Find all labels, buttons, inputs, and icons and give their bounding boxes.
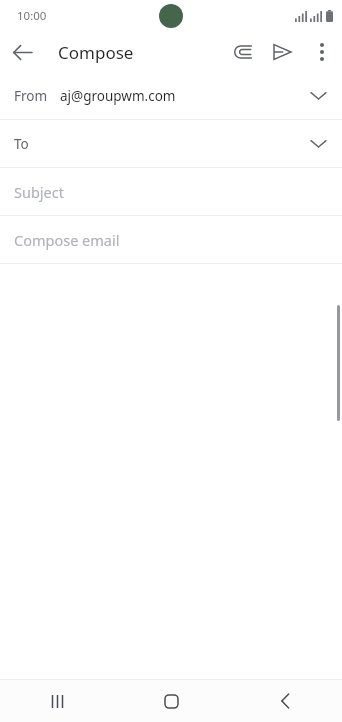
staticText: Compose email (14, 230, 120, 250)
button[interactable]: Recents (22, 680, 92, 722)
button[interactable]: Compose email (0, 216, 342, 263)
button[interactable]: To (0, 120, 342, 167)
staticText: 10:00 (17, 8, 47, 24)
button[interactable]: More options (302, 32, 342, 72)
button[interactable]: Back (250, 680, 320, 722)
staticText: To (14, 135, 29, 153)
staticText: aj@groupwm.com (60, 87, 176, 105)
button[interactable]: Home (136, 680, 206, 722)
button[interactable]: Back (0, 32, 44, 72)
staticText: From (14, 87, 48, 105)
button[interactable]: From (0, 72, 342, 119)
button[interactable]: Send (262, 32, 302, 72)
staticText: Subject (14, 182, 64, 202)
staticText: Compose (58, 41, 134, 64)
button[interactable]: Attach file (222, 32, 262, 72)
button[interactable]: Subject (0, 168, 342, 215)
